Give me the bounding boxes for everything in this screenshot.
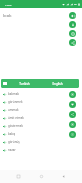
button[interactable]: Pronounce	[69, 121, 76, 128]
button[interactable]: göstermek	[0, 122, 82, 130]
button[interactable]: Turkish	[8, 79, 41, 88]
staticText: bakmak	[8, 92, 20, 96]
staticText: 98	[74, 3, 77, 6]
button[interactable]: Share	[69, 111, 76, 118]
staticText: look	[3, 12, 12, 18]
button[interactable]: bakmak	[0, 90, 82, 98]
staticText: ummak	[8, 108, 19, 112]
staticText: ümit etmek	[8, 116, 24, 120]
button[interactable]: nazar	[0, 146, 82, 154]
button[interactable]: Favourite	[69, 21, 76, 28]
button[interactable]: görünmek	[0, 98, 82, 106]
staticText: Turkish	[19, 82, 30, 86]
button[interactable]: Share	[69, 39, 76, 46]
staticText: 12:06	[5, 3, 12, 6]
button[interactable]: ümit etmek	[0, 114, 82, 122]
staticText: görünüş	[8, 140, 20, 144]
button[interactable]: Info	[69, 131, 76, 138]
button[interactable]: Pronounce	[69, 12, 76, 19]
staticText: English	[52, 82, 63, 86]
staticText: görünmek	[8, 100, 23, 104]
button[interactable]: ummak	[0, 106, 82, 114]
button[interactable]: English	[41, 79, 74, 88]
button[interactable]: Favourite	[69, 101, 76, 108]
staticText: göstermek	[8, 124, 23, 128]
button[interactable]: Settings	[69, 91, 76, 98]
staticText: bakış	[8, 132, 16, 136]
button[interactable]: Back	[59, 172, 68, 181]
button[interactable]: görünüş	[0, 138, 82, 146]
button[interactable]: Recents	[14, 172, 23, 181]
button[interactable]: Camera	[69, 30, 76, 37]
button[interactable]: bakış	[0, 130, 82, 138]
button[interactable]: Home	[37, 172, 46, 181]
staticText: nazar	[8, 148, 16, 152]
